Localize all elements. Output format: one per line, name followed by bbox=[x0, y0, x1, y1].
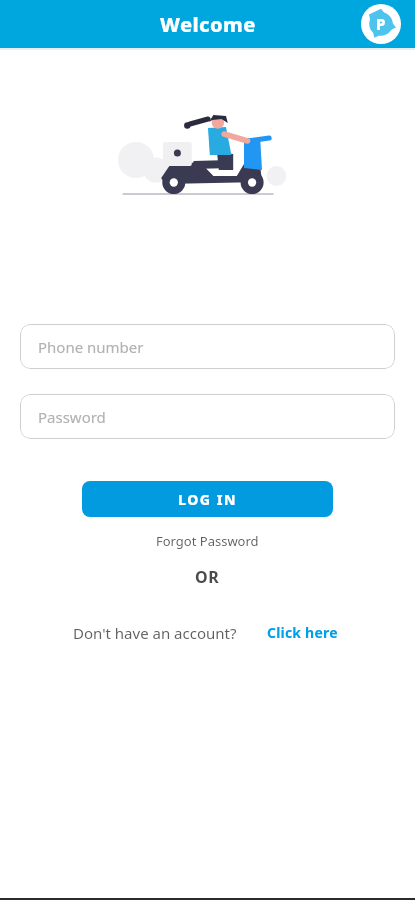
button[interactable]: Password bbox=[20, 394, 395, 439]
staticText: Forgot Password bbox=[156, 532, 259, 550]
button[interactable]: LOG IN bbox=[82, 481, 333, 517]
staticText: Phone number bbox=[38, 337, 144, 357]
staticText: Click here bbox=[267, 623, 338, 642]
button[interactable]: App logo bbox=[361, 4, 401, 44]
staticText: Welcome bbox=[160, 11, 256, 38]
staticText: P bbox=[376, 14, 386, 34]
button[interactable]: Phone number bbox=[20, 324, 395, 369]
button[interactable]: Click here bbox=[263, 620, 342, 645]
staticText: OR bbox=[195, 566, 220, 588]
staticText: Don't have an account? bbox=[73, 623, 237, 643]
staticText: LOG IN bbox=[178, 490, 237, 509]
button[interactable]: Forgot Password bbox=[148, 529, 267, 553]
staticText: Password bbox=[38, 407, 106, 427]
